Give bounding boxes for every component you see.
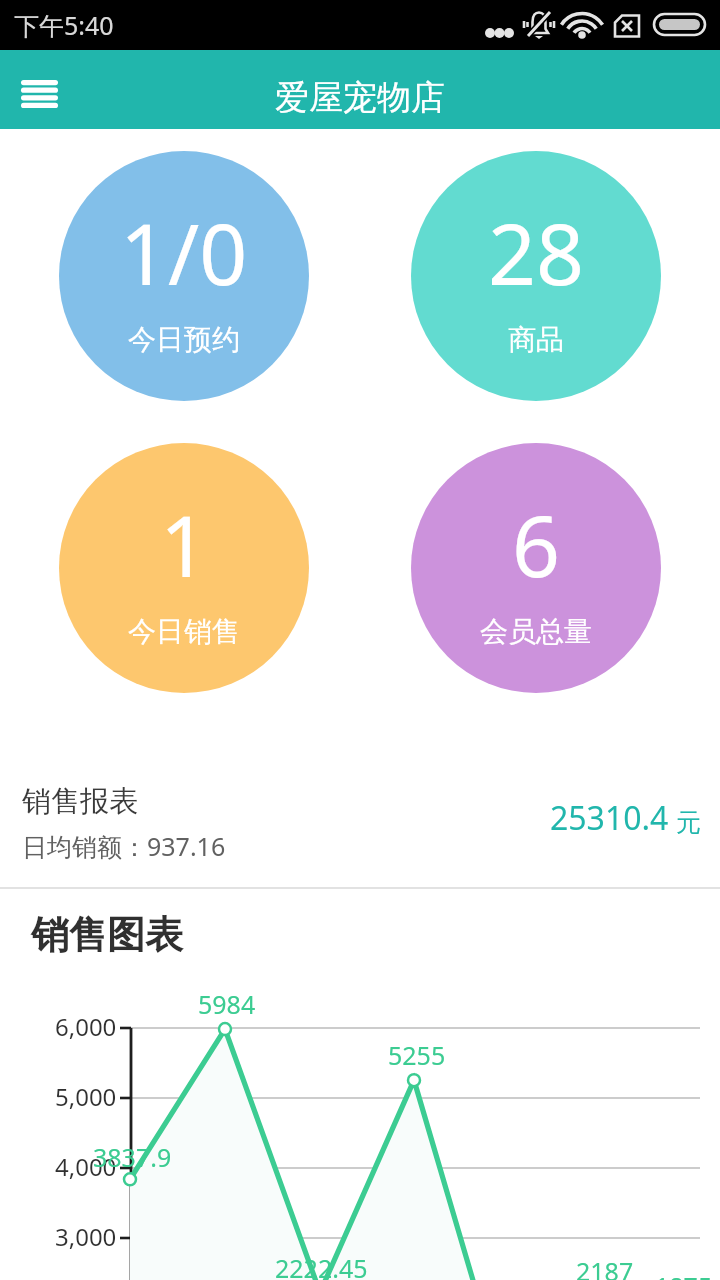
staticText: 5255 — [388, 1038, 446, 1072]
button[interactable]: 1 — [59, 443, 309, 693]
staticText: 1/0 — [120, 195, 248, 309]
staticText: 6,000 — [55, 1010, 117, 1043]
button[interactable]: Menu — [0, 50, 79, 129]
button[interactable]: 1/0 — [59, 151, 309, 401]
staticText: 下午5:40 — [14, 8, 114, 42]
staticText: 4,000 — [55, 1150, 117, 1183]
other: Status bar — [0, 0, 720, 50]
staticText: 6 — [512, 487, 561, 601]
staticText: 2222.45 — [275, 1251, 368, 1280]
staticText: 3837.9 — [93, 1140, 172, 1174]
button[interactable]: 6 — [411, 443, 661, 693]
button[interactable]: 28 — [411, 151, 661, 401]
staticText: 1875 — [655, 1269, 713, 1280]
staticText: 28 — [488, 195, 585, 309]
staticText: 今日预约 — [128, 322, 240, 357]
staticText: 元 — [676, 807, 701, 838]
staticText: 商品 — [508, 322, 564, 357]
staticText: 今日销售 — [128, 614, 240, 649]
staticText: 销售报表 — [22, 783, 138, 820]
staticText: 日均销额：937.16 — [22, 829, 226, 863]
staticText: 25310.4 — [550, 796, 669, 840]
staticText: 1 — [160, 487, 209, 601]
staticText: 会员总量 — [480, 614, 592, 649]
staticText: 3,000 — [55, 1220, 117, 1253]
staticText: 5,000 — [55, 1080, 117, 1113]
button[interactable]: 销售报表 — [0, 693, 720, 887]
staticText: 2187 — [576, 1254, 634, 1280]
staticText: 销售图表 — [31, 911, 183, 959]
staticText: 5984 — [198, 987, 256, 1021]
staticText: 爱屋宠物店 — [275, 76, 445, 119]
